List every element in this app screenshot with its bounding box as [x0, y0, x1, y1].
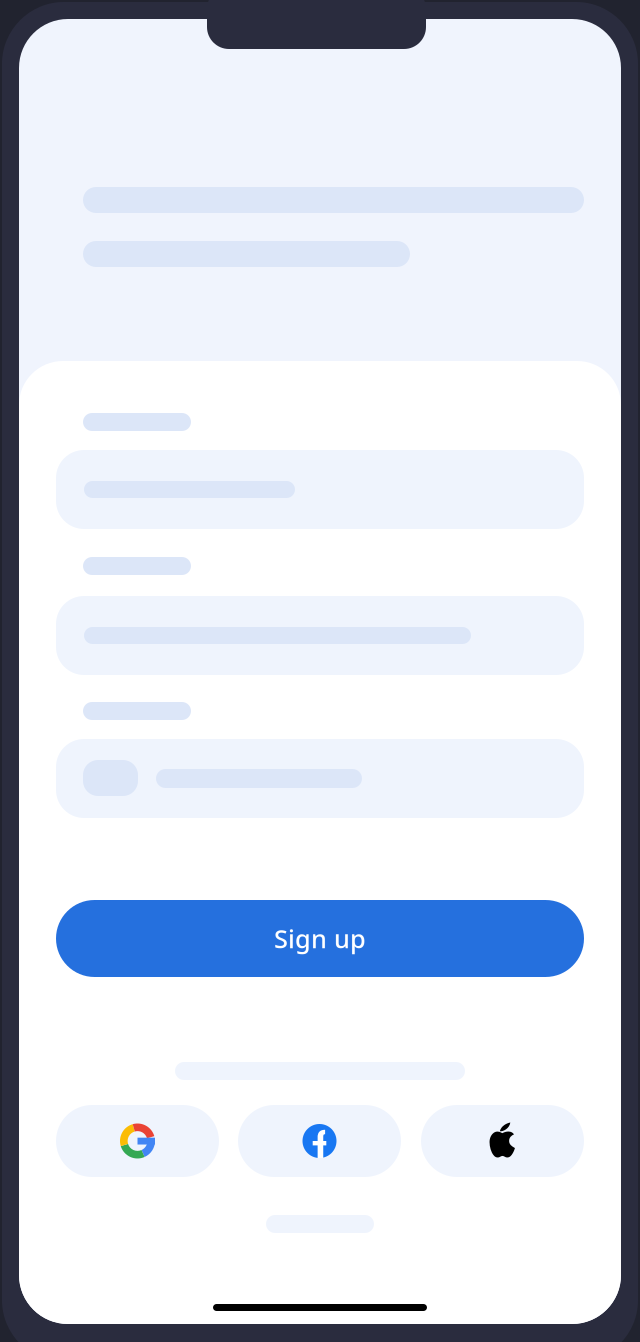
button[interactable]: Sign up with Apple	[421, 1105, 584, 1177]
button[interactable]: Sign up with Google	[56, 1105, 219, 1177]
button[interactable]: Sign up	[56, 900, 584, 977]
staticText: Sign up	[274, 922, 366, 955]
button[interactable]: Sign up with Facebook	[238, 1105, 401, 1177]
